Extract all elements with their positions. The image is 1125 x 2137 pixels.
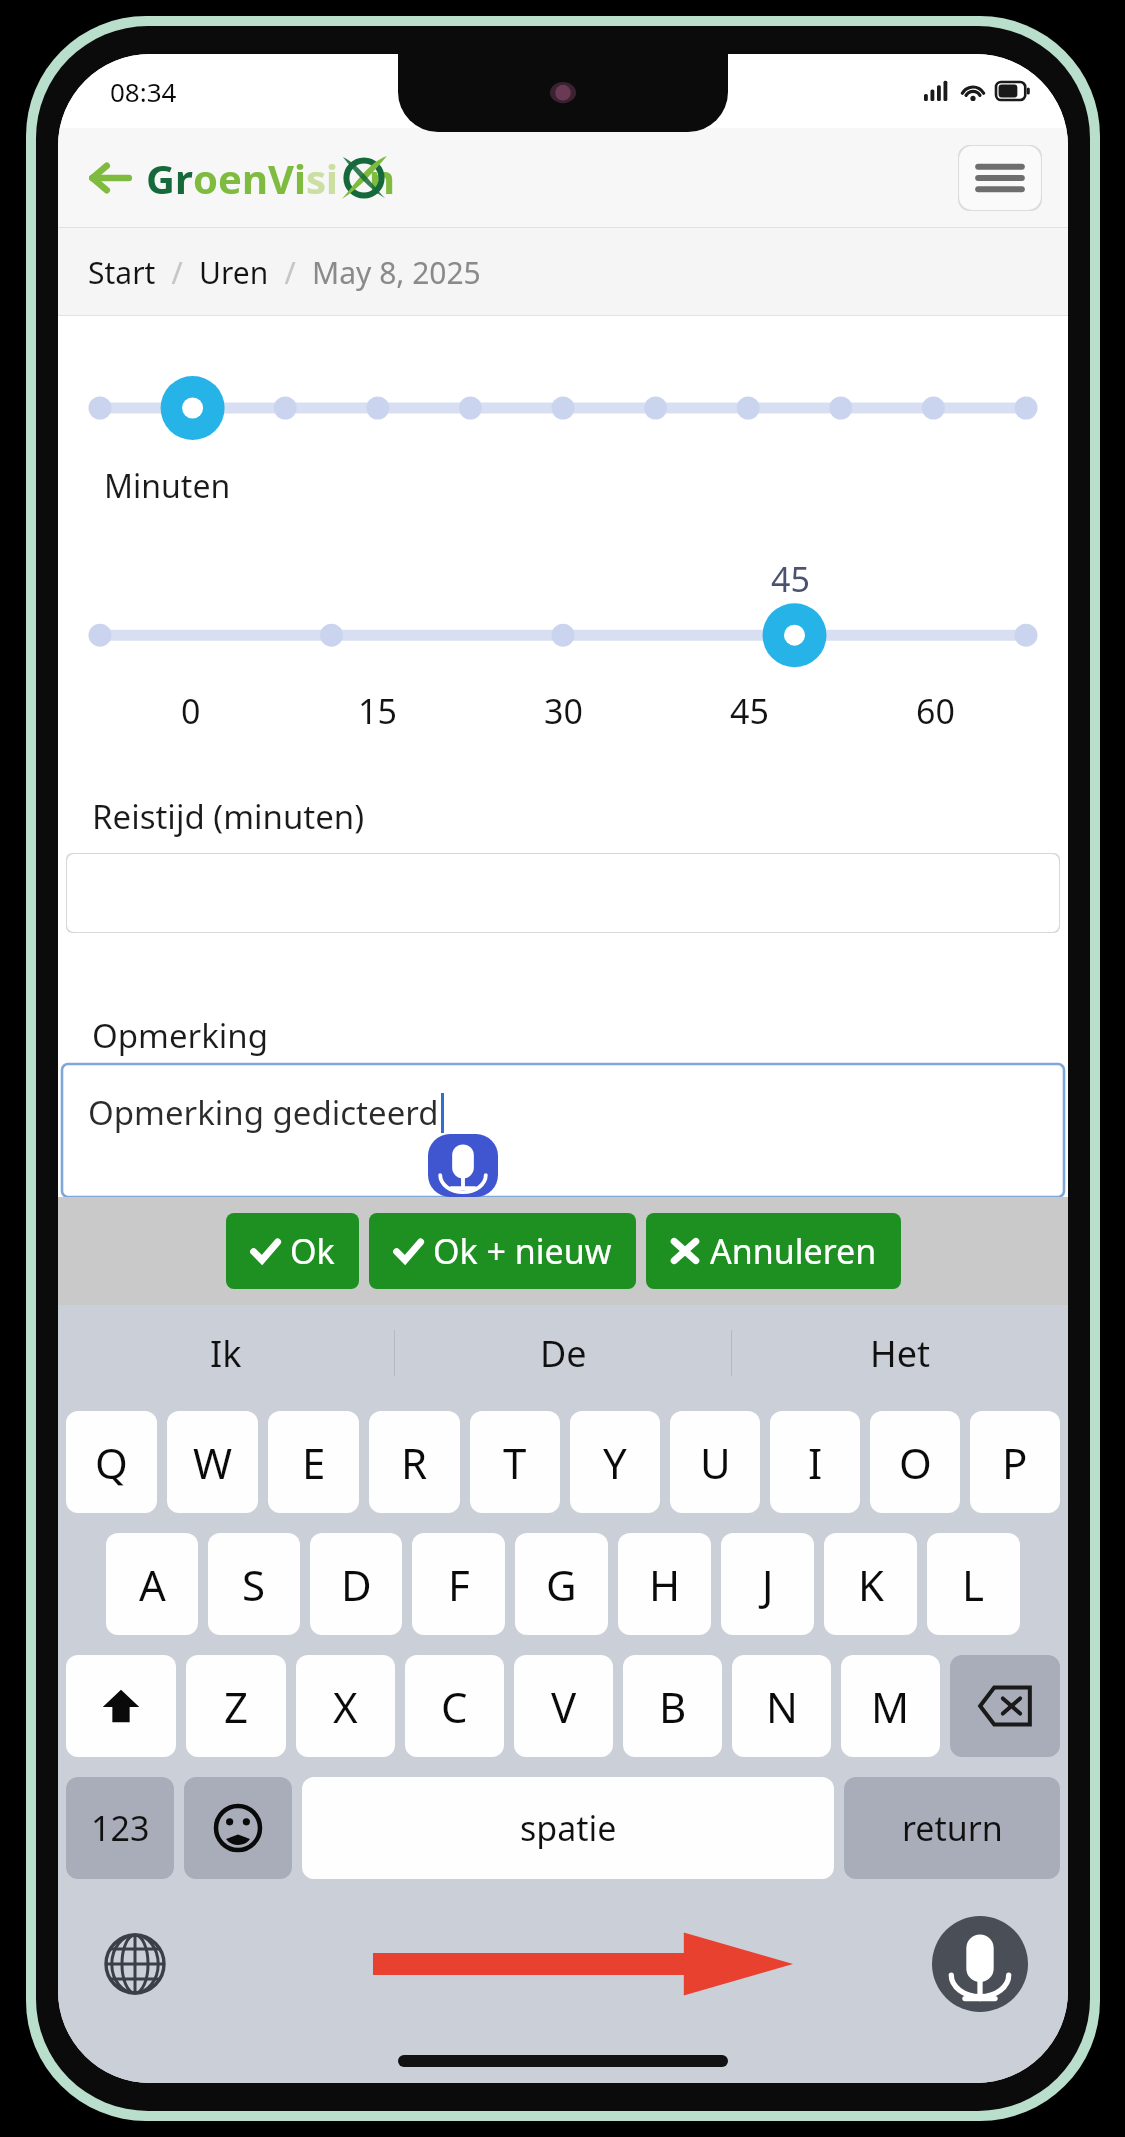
staticText: I — [808, 1434, 823, 1491]
button[interactable]: D — [310, 1533, 402, 1635]
staticText: Opmerking — [92, 1013, 268, 1058]
button[interactable]: Menu — [958, 145, 1042, 211]
button[interactable]: M — [841, 1655, 940, 1757]
button[interactable]: Opmerking gedicteerd — [62, 1064, 1064, 1197]
staticText: D — [341, 1556, 372, 1613]
staticText: return — [902, 1805, 1003, 1851]
button[interactable]: V — [514, 1655, 613, 1757]
button[interactable]: Voice input — [932, 1916, 1028, 2012]
button[interactable]: Back — [84, 145, 401, 211]
button[interactable]: Ok + nieuw — [369, 1213, 636, 1289]
staticText: si — [306, 151, 339, 205]
button[interactable]: U — [670, 1411, 760, 1513]
other: Back — [90, 161, 130, 195]
staticText: Ik — [210, 1329, 242, 1378]
staticText: / — [156, 252, 199, 293]
staticText: Reistijd (minuten) — [92, 794, 365, 839]
staticText: K — [858, 1556, 884, 1613]
button[interactable]: B — [623, 1655, 722, 1757]
staticText: B — [659, 1678, 687, 1735]
staticText: Het — [870, 1329, 930, 1378]
button[interactable]: Start — [88, 252, 156, 293]
button[interactable]: Annuleren — [646, 1213, 901, 1289]
staticText: R — [401, 1434, 428, 1491]
staticText: V — [551, 1678, 577, 1735]
staticText: Ok — [290, 1228, 335, 1274]
button[interactable] — [66, 853, 1060, 933]
staticText: Annuleren — [710, 1228, 877, 1274]
staticText: Y — [603, 1434, 627, 1491]
staticText: U — [700, 1434, 731, 1491]
button[interactable]: E — [268, 1411, 359, 1513]
staticText: 60 — [916, 688, 955, 734]
staticText: J — [762, 1556, 774, 1613]
button[interactable]: L — [927, 1533, 1020, 1635]
button[interactable]: Ok — [226, 1213, 359, 1289]
staticText: 08:34 — [110, 74, 177, 109]
button[interactable]: O — [870, 1411, 960, 1513]
staticText: Gr — [146, 151, 193, 205]
button[interactable]: R — [369, 1411, 460, 1513]
staticText: W — [193, 1434, 233, 1491]
staticText: 123 — [91, 1805, 150, 1851]
staticText: G — [546, 1556, 577, 1613]
staticText: T — [503, 1434, 527, 1491]
button[interactable]: Z — [186, 1655, 286, 1757]
button[interactable]: De — [395, 1305, 731, 1401]
staticText: Minuten — [104, 464, 231, 508]
staticText: Opmerking gedicteerd — [88, 1090, 439, 1135]
button[interactable]: H — [618, 1533, 711, 1635]
button[interactable]: Emoji — [184, 1777, 292, 1879]
button[interactable]: J — [721, 1533, 814, 1635]
button[interactable]: C — [405, 1655, 504, 1757]
button[interactable]: F — [412, 1533, 505, 1635]
button[interactable]: T — [470, 1411, 560, 1513]
staticText: oen — [193, 151, 268, 205]
staticText: A — [139, 1556, 166, 1613]
button[interactable]: Shift — [66, 1655, 176, 1757]
button[interactable]: W — [167, 1411, 258, 1513]
staticText: S — [242, 1556, 266, 1613]
staticText: M — [871, 1678, 910, 1735]
staticText: Q — [95, 1434, 128, 1491]
staticText: / — [269, 252, 312, 293]
button[interactable]: K — [824, 1533, 917, 1635]
button[interactable]: return — [844, 1777, 1060, 1879]
button[interactable]: P — [970, 1411, 1060, 1513]
staticText: 45 — [771, 556, 810, 602]
button[interactable]: S — [208, 1533, 300, 1635]
button[interactable]: N — [732, 1655, 831, 1757]
button[interactable]: X — [296, 1655, 395, 1757]
button[interactable]: Change language — [104, 1933, 166, 1995]
staticText: F — [448, 1556, 470, 1613]
staticText: Z — [224, 1678, 249, 1735]
staticText: 0 — [181, 688, 201, 734]
staticText: E — [302, 1434, 326, 1491]
staticText: 45 — [730, 688, 769, 734]
button[interactable]: I — [770, 1411, 860, 1513]
button[interactable]: Het — [732, 1305, 1068, 1401]
button[interactable]: spatie — [302, 1777, 834, 1879]
button[interactable]: Uren — [199, 252, 269, 293]
staticText: C — [441, 1678, 468, 1735]
staticText: 30 — [544, 688, 583, 734]
button[interactable]: Y — [570, 1411, 660, 1513]
staticText: May 8, 2025 — [312, 252, 481, 293]
staticText: O — [899, 1434, 932, 1491]
button[interactable]: A — [106, 1533, 198, 1635]
staticText: 15 — [358, 688, 397, 734]
staticText: Vi — [268, 151, 306, 205]
button[interactable]: Dictate — [428, 1134, 498, 1197]
button[interactable]: Backspace — [950, 1655, 1060, 1757]
button[interactable]: 123 — [66, 1777, 174, 1879]
staticText: n — [369, 151, 395, 205]
button[interactable]: Q — [66, 1411, 157, 1513]
staticText: N — [766, 1678, 798, 1735]
staticText: P — [1002, 1434, 1028, 1491]
staticText: L — [962, 1556, 985, 1613]
button[interactable]: G — [515, 1533, 608, 1635]
staticText: De — [540, 1329, 587, 1378]
staticText: H — [649, 1556, 681, 1613]
button[interactable]: Ik — [58, 1305, 394, 1401]
staticText: Ok + nieuw — [433, 1228, 612, 1274]
